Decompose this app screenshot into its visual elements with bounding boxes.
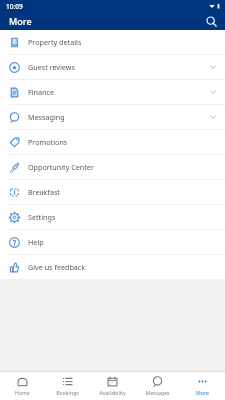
button[interactable]: Home bbox=[0, 372, 45, 400]
button[interactable]: Guest reviews bbox=[0, 55, 225, 79]
button[interactable]: Property details bbox=[0, 30, 225, 54]
button[interactable]: Help bbox=[0, 230, 225, 254]
button[interactable]: Messages bbox=[135, 372, 180, 400]
staticText: Property details bbox=[28, 37, 82, 47]
button[interactable]: Finance bbox=[0, 80, 225, 104]
staticText: Messages bbox=[145, 389, 170, 396]
staticText: Give us feedback bbox=[28, 262, 86, 272]
button[interactable]: Breakfast bbox=[0, 180, 225, 204]
button[interactable]: Opportunity Center bbox=[0, 155, 225, 179]
button[interactable]: Settings bbox=[0, 205, 225, 229]
staticText: Finance bbox=[28, 87, 55, 97]
staticText: Breakfast bbox=[28, 187, 60, 197]
button[interactable]: Bookings bbox=[45, 372, 90, 400]
staticText: Availability bbox=[99, 389, 126, 396]
button[interactable]: Availability bbox=[90, 372, 135, 400]
staticText: Settings bbox=[28, 212, 56, 222]
staticText: Messaging bbox=[28, 112, 65, 122]
staticText: Home bbox=[15, 389, 30, 396]
staticText: Promotions bbox=[28, 137, 68, 147]
staticText: 10:09 bbox=[6, 2, 23, 11]
button[interactable]: Promotions bbox=[0, 130, 225, 154]
staticText: Opportunity Center bbox=[28, 162, 94, 172]
button[interactable]: Search bbox=[203, 13, 219, 29]
staticText: Guest reviews bbox=[28, 62, 75, 72]
staticText: More bbox=[9, 15, 32, 27]
button[interactable]: Give us feedback bbox=[0, 255, 225, 279]
staticText: More bbox=[196, 389, 209, 396]
button[interactable]: More bbox=[180, 372, 225, 400]
staticText: Bookings bbox=[56, 389, 79, 396]
staticText: Help bbox=[28, 237, 44, 247]
button[interactable]: Messaging bbox=[0, 105, 225, 129]
